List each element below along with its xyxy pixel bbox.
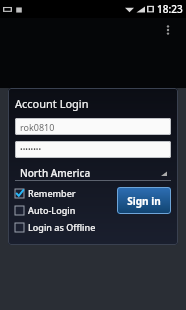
- staticText: Account Login: [15, 96, 89, 111]
- button[interactable]: Login as Offline: [15, 221, 113, 233]
- button[interactable]: North America: [15, 165, 171, 181]
- button[interactable]: Sign in: [117, 187, 171, 214]
- staticText: Auto-Login: [28, 204, 76, 216]
- staticText: Login as Offline: [28, 221, 96, 233]
- button[interactable]: Auto-Login: [15, 204, 113, 216]
- button[interactable]: Remember: [15, 187, 113, 199]
- staticText: Sign in: [127, 194, 161, 208]
- button[interactable]: ••••••••: [15, 141, 171, 158]
- staticText: ••••••••: [20, 145, 42, 155]
- staticText: Remember: [28, 187, 76, 199]
- button[interactable]: rok0810: [15, 118, 171, 135]
- button[interactable]: More options: [158, 20, 178, 40]
- staticText: 18:23: [157, 2, 183, 16]
- staticText: North America: [20, 166, 91, 180]
- staticText: rok0810: [20, 121, 55, 133]
